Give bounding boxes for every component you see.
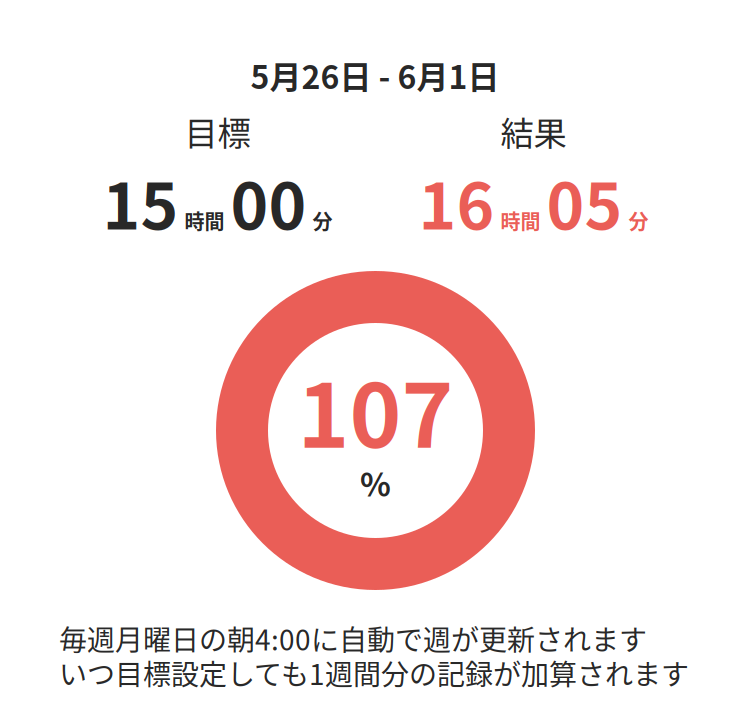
button[interactable]: 結果	[346, 107, 721, 232]
staticText: いつ目標設定しても1週間分の記録が加算されます	[59, 652, 689, 693]
button[interactable]: 達成率 107 パーセント	[216, 271, 535, 590]
staticText: 16	[418, 155, 494, 248]
button[interactable]: 5月26日 - 6月1日	[0, 55, 750, 95]
staticText: 時間	[184, 206, 224, 235]
button[interactable]: 目標	[30, 107, 405, 232]
staticText: %	[360, 459, 391, 506]
staticText: 00	[230, 155, 306, 248]
staticText: 結果	[500, 107, 566, 155]
staticText: 107	[297, 346, 453, 473]
staticText: 5月26日 - 6月1日	[250, 52, 499, 98]
staticText: 毎週月曜日の朝4:00に自動で週が更新されます	[59, 618, 647, 658]
staticText: 目標	[184, 107, 250, 155]
staticText: 時間	[500, 206, 540, 235]
staticText: 分	[312, 206, 332, 235]
staticText: 分	[628, 206, 648, 235]
staticText: 15	[102, 155, 178, 248]
staticText: 05	[546, 155, 622, 248]
